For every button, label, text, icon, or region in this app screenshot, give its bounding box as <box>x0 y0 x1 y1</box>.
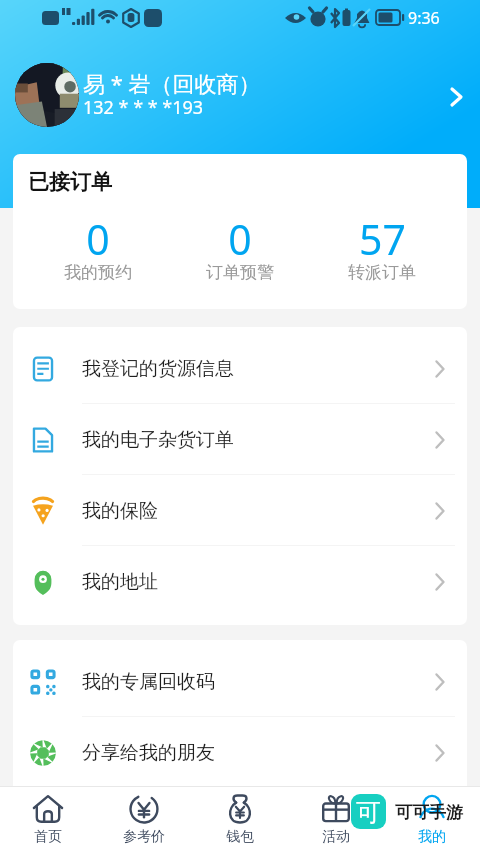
staticText: 我的专属回收码 <box>82 670 215 694</box>
staticText: 可 <box>356 797 381 828</box>
button[interactable]: 我登记的货源信息 <box>13 333 467 404</box>
staticText: 活动 <box>322 828 350 846</box>
staticText: 可可手游 <box>395 802 463 823</box>
staticText: 132 * * * *193 <box>83 95 204 120</box>
staticText: 我的保险 <box>82 499 158 523</box>
button[interactable]: 分享给我的朋友 <box>13 717 467 788</box>
button[interactable]: 57 <box>311 211 453 288</box>
staticText: 订单预警 <box>206 262 274 283</box>
other: Profile details <box>450 87 463 107</box>
staticText: 我的预约 <box>64 262 132 283</box>
button[interactable]: 0 <box>27 211 169 288</box>
button[interactable]: 钱包 <box>192 786 288 853</box>
button[interactable]: 我的电子杂货订单 <box>13 404 467 475</box>
staticText: 首页 <box>34 828 62 846</box>
staticText: 我登记的货源信息 <box>82 357 234 381</box>
staticText: 57 <box>359 211 406 267</box>
button[interactable]: 我的保险 <box>13 475 467 546</box>
staticText: 分享给我的朋友 <box>82 741 215 765</box>
staticText: 钱包 <box>226 828 254 846</box>
button[interactable]: 我的地址 <box>13 546 467 617</box>
staticText: 9:36 <box>408 7 440 29</box>
button[interactable]: 我的 <box>384 786 480 853</box>
staticText: 我的地址 <box>82 570 158 594</box>
staticText: 参考价 <box>123 828 165 846</box>
button[interactable]: 首页 <box>0 786 96 853</box>
staticText: 我的电子杂货订单 <box>82 428 234 452</box>
staticText: 0 <box>86 211 110 267</box>
staticText: 0 <box>228 211 252 267</box>
button[interactable]: 易 * 岩（回收商） <box>0 55 480 135</box>
staticText: 已接订单 <box>28 169 112 195</box>
button[interactable]: 0 <box>169 211 311 288</box>
staticText: 转派订单 <box>348 262 416 283</box>
staticText: 我的 <box>418 828 446 846</box>
button[interactable]: 我的专属回收码 <box>13 646 467 717</box>
staticText: 易 * 岩（回收商） <box>83 68 261 98</box>
button[interactable]: 参考价 <box>96 786 192 853</box>
button[interactable]: 活动 <box>288 786 384 853</box>
